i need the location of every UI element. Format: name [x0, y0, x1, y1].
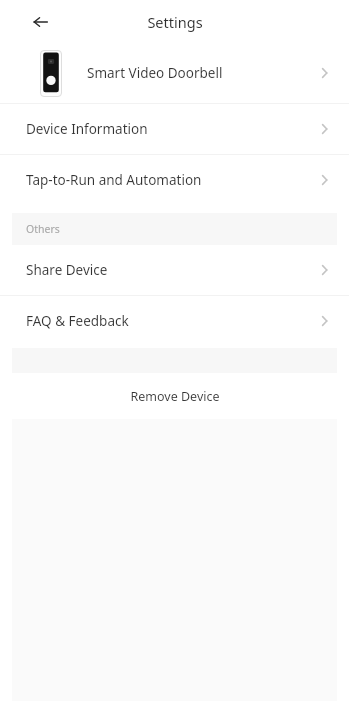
button[interactable]: Remove Device [0, 373, 349, 419]
staticText: Share Device [26, 261, 108, 279]
button[interactable]: Smart Video Doorbell [0, 43, 349, 103]
staticText: Others [26, 222, 60, 236]
button[interactable]: FAQ & Feedback [0, 296, 349, 346]
staticText: Smart Video Doorbell [87, 64, 223, 82]
button[interactable]: Tap-to-Run and Automation [0, 155, 349, 204]
staticText: FAQ & Feedback [26, 312, 129, 330]
staticText: Device Information [26, 120, 148, 138]
button[interactable]: Share Device [0, 245, 349, 295]
staticText: Tap-to-Run and Automation [26, 171, 202, 189]
staticText: Remove Device [130, 388, 220, 405]
button[interactable]: Back [28, 10, 52, 34]
button[interactable]: Device Information [0, 104, 349, 154]
staticText: Settings [147, 12, 203, 32]
